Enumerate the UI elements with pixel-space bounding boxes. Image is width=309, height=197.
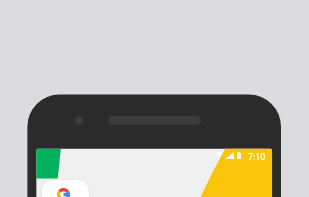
other: Wi-Fi <box>216 152 222 157</box>
button[interactable]: Google Search <box>42 180 89 197</box>
other: Mobile signal <box>225 152 234 159</box>
staticText: 7:10 <box>248 151 266 163</box>
other: Battery <box>237 152 241 159</box>
